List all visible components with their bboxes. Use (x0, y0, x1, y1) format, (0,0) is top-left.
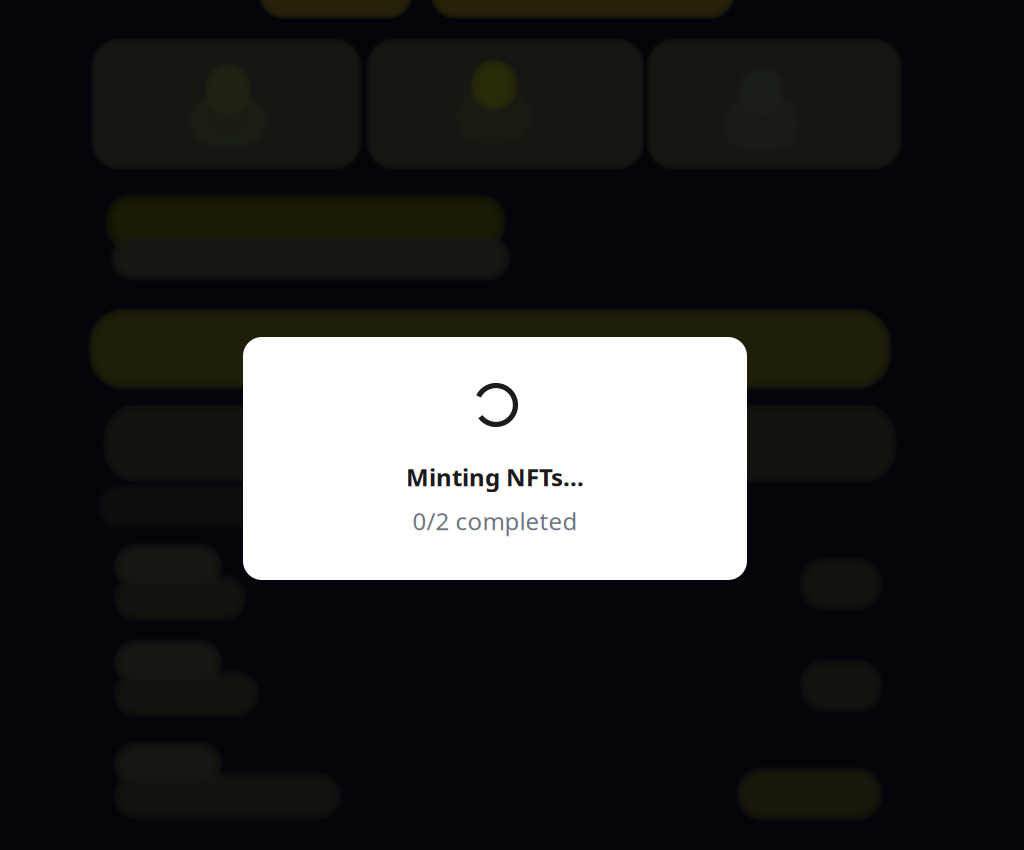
staticText: 0/2 completed (412, 505, 577, 537)
staticText: Minting NFTs... (406, 461, 584, 493)
